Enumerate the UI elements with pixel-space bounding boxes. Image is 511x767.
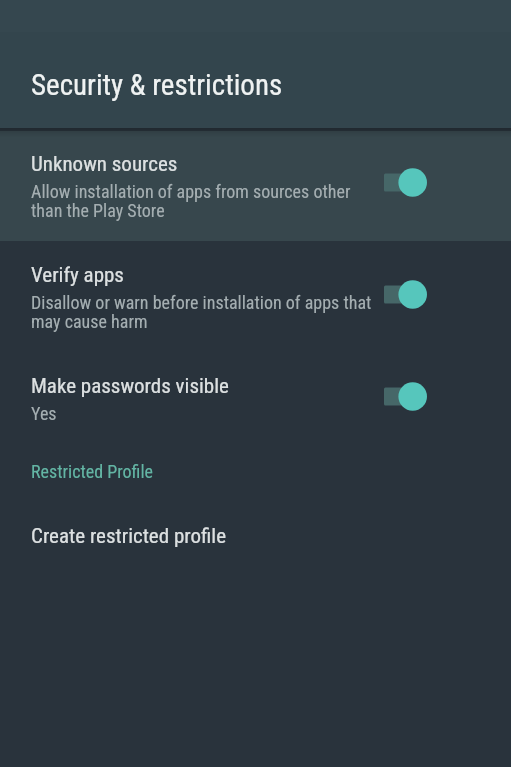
- button[interactable]: Unknown sources: [384, 168, 427, 197]
- button[interactable]: Verify apps: [384, 280, 427, 309]
- button[interactable]: Create restricted profile: [0, 491, 511, 553]
- button[interactable]: Security & restrictions: [0, 32, 511, 128]
- staticText: Allow installation of apps from sources …: [31, 181, 380, 221]
- staticText: Restricted Profile: [31, 461, 153, 482]
- staticText: Unknown sources: [31, 152, 178, 177]
- staticText: Security & restrictions: [31, 68, 283, 102]
- staticText: Make passwords visible: [31, 374, 229, 399]
- staticText: Yes: [31, 403, 57, 424]
- button[interactable]: Make passwords visible: [384, 382, 427, 411]
- staticText: Create restricted profile: [31, 524, 226, 549]
- staticText: Verify apps: [31, 263, 124, 288]
- button[interactable]: Unknown sources: [0, 131, 511, 241]
- button[interactable]: Restricted Profile: [0, 441, 511, 491]
- staticText: Disallow or warn before installation of …: [31, 292, 380, 332]
- button[interactable]: Make passwords visible: [0, 353, 511, 441]
- button[interactable]: Verify apps: [0, 241, 511, 353]
